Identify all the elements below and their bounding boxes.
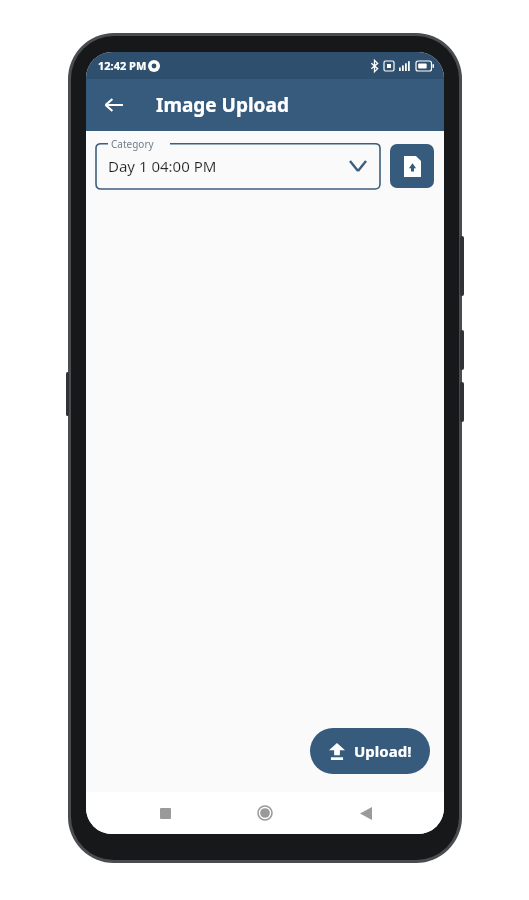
staticText: Category bbox=[111, 137, 154, 151]
button[interactable]: Recent apps bbox=[143, 792, 187, 834]
button[interactable]: Day 1 04:00 PM bbox=[96, 143, 380, 189]
staticText: Day 1 04:00 PM bbox=[108, 156, 217, 176]
button[interactable]: Home bbox=[243, 792, 287, 834]
staticText: 12:42 PM bbox=[98, 58, 147, 73]
button[interactable]: Choose file bbox=[390, 144, 434, 188]
button[interactable]: Upload! bbox=[310, 728, 430, 774]
staticText: Image Upload bbox=[156, 92, 289, 118]
staticText: Upload! bbox=[354, 741, 412, 761]
button[interactable]: Back bbox=[94, 85, 134, 125]
button[interactable]: Back bbox=[344, 792, 388, 834]
